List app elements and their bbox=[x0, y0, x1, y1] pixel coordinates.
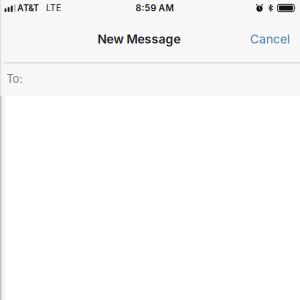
staticText: To: bbox=[7, 72, 23, 86]
button[interactable]: Cancel bbox=[240, 25, 300, 53]
staticText: AT&T bbox=[17, 3, 39, 13]
staticText: 8:59 AM bbox=[135, 2, 173, 13]
staticText: New Message bbox=[97, 32, 180, 46]
staticText: Cancel bbox=[250, 32, 290, 46]
staticText: LTE bbox=[46, 3, 61, 13]
